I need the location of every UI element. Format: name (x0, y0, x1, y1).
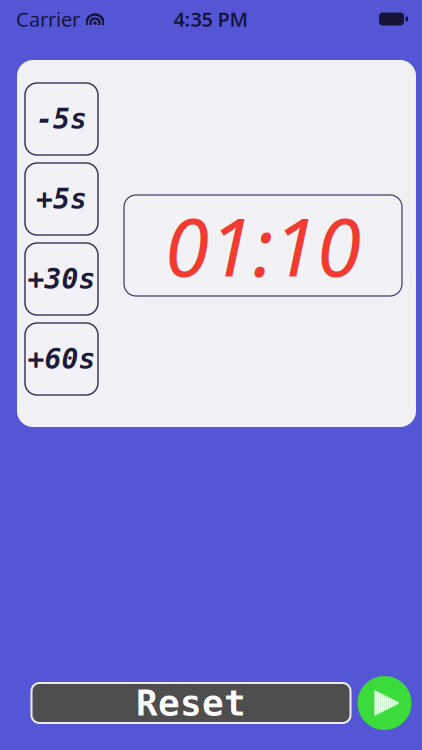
staticText: 01:10 (165, 192, 361, 299)
button[interactable]: Start timer (357, 676, 411, 730)
staticText: Reset (136, 683, 246, 723)
staticText: Carrier (16, 6, 80, 32)
button[interactable]: Reset (31, 683, 350, 723)
staticText: 4:35 PM (173, 6, 248, 32)
staticText: -5s (36, 103, 87, 135)
staticText: +5s (36, 183, 87, 215)
staticText: +30s (27, 263, 95, 295)
button[interactable]: +5s (25, 163, 98, 235)
staticText: +60s (27, 343, 95, 375)
button[interactable]: +30s (25, 243, 98, 315)
button[interactable]: -5s (25, 83, 98, 155)
button[interactable]: +60s (25, 323, 98, 395)
